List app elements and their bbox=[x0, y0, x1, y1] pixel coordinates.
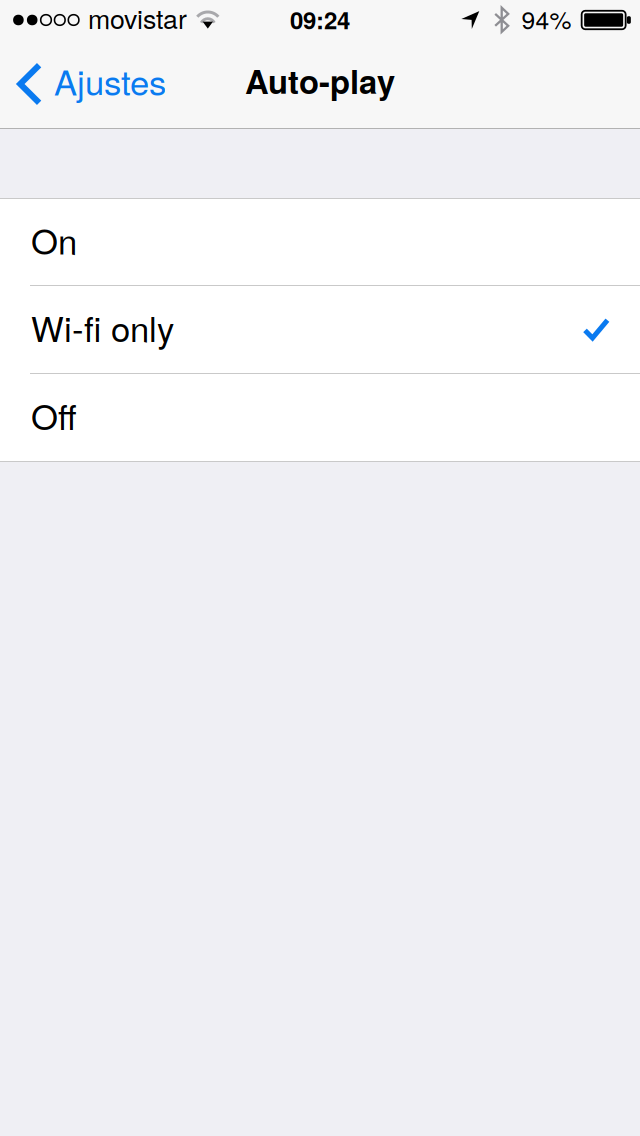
staticText: Ajustes bbox=[54, 56, 166, 105]
button[interactable]: Wi-fi only bbox=[0, 286, 640, 373]
staticText: Wi-fi only bbox=[31, 302, 174, 352]
button[interactable]: On bbox=[0, 199, 640, 285]
staticText: Auto-play bbox=[245, 57, 395, 104]
staticText: Off bbox=[31, 390, 77, 440]
button[interactable]: Ajustes bbox=[0, 40, 178, 128]
staticText: 09:24 bbox=[290, 2, 350, 37]
button[interactable]: Off bbox=[0, 374, 640, 461]
staticText: On bbox=[31, 215, 77, 264]
staticText: movistar bbox=[88, 0, 187, 37]
staticText: 94% bbox=[521, 1, 571, 36]
